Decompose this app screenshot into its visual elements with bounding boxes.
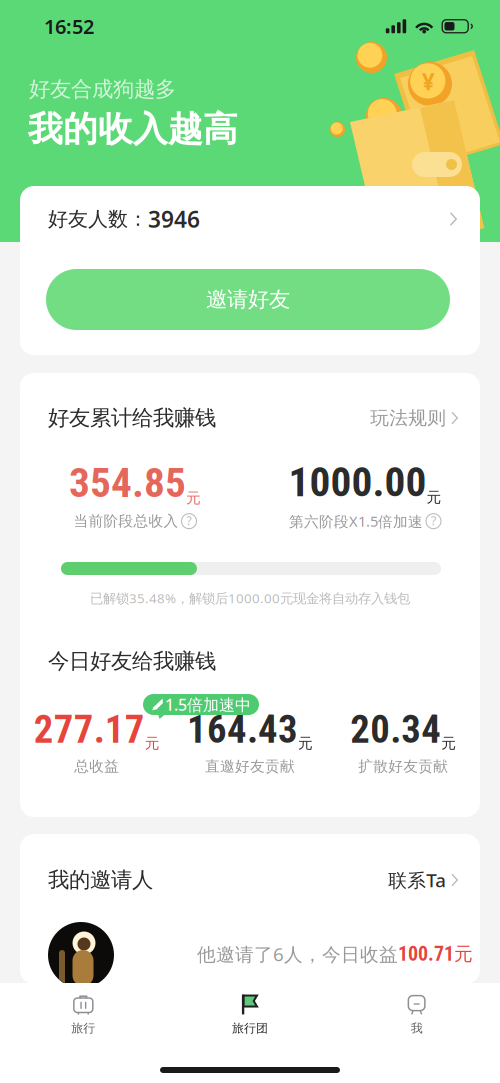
staticText: 277.17 xyxy=(34,707,145,752)
button[interactable]: 旅行 xyxy=(0,983,167,1053)
staticText: 1000.00 xyxy=(288,458,426,506)
staticText: 3946 xyxy=(148,204,200,234)
staticText: 好友合成狗越多 xyxy=(29,76,176,102)
staticText: 元 xyxy=(186,489,201,507)
staticText: 好友人数： xyxy=(48,207,148,231)
staticText: 16:52 xyxy=(44,13,94,40)
staticText: 354.85 xyxy=(69,459,186,507)
staticText: 已解锁35.48%，解锁后1000.00元现金将自动存入钱包 xyxy=(90,589,410,607)
button[interactable]: 联系Ta xyxy=(388,868,458,892)
staticText: 直邀好友贡献 xyxy=(205,757,295,775)
staticText: 旅行团 xyxy=(232,1021,268,1036)
staticText: 旅行 xyxy=(71,1021,95,1036)
staticText: 他邀请了6人，今日收益 xyxy=(197,942,398,966)
staticText: 我的邀请人 xyxy=(48,867,153,893)
staticText: 第六阶段X1.5倍加速 xyxy=(289,511,423,531)
staticText: 扩散好友贡献 xyxy=(358,757,448,775)
button[interactable]: 玩法规则 xyxy=(370,406,458,429)
staticText: 20.34 xyxy=(350,707,441,752)
staticText: 元 xyxy=(426,488,441,506)
button[interactable]: 我 xyxy=(333,983,500,1053)
button[interactable]: 邀请好友 xyxy=(46,269,450,330)
staticText: 1.5倍加速中 xyxy=(165,694,251,715)
staticText: 好友累计给我赚钱 xyxy=(48,405,216,431)
staticText: 元 xyxy=(441,734,456,752)
staticText: 总收益 xyxy=(74,757,119,775)
staticText: 当前阶段总收入 xyxy=(73,512,178,530)
button[interactable]: 好友人数： xyxy=(20,186,480,252)
staticText: 元 xyxy=(454,942,473,965)
staticText: 164.43 xyxy=(187,707,298,752)
button[interactable]: 旅行团 xyxy=(167,983,333,1053)
staticText: ? xyxy=(431,513,436,529)
staticText: 联系Ta xyxy=(388,868,446,892)
staticText: 今日好友给我赚钱 xyxy=(48,648,216,674)
staticText: 我 xyxy=(411,1021,423,1036)
staticText: 玩法规则 xyxy=(370,406,446,429)
staticText: 我的收入越高 xyxy=(28,108,238,151)
staticText: 元 xyxy=(145,734,160,752)
staticText: ¥ xyxy=(422,66,435,96)
staticText: ? xyxy=(186,513,191,529)
staticText: 邀请好友 xyxy=(206,286,290,313)
staticText: 100.71 xyxy=(398,942,454,966)
staticText: 元 xyxy=(298,734,313,752)
